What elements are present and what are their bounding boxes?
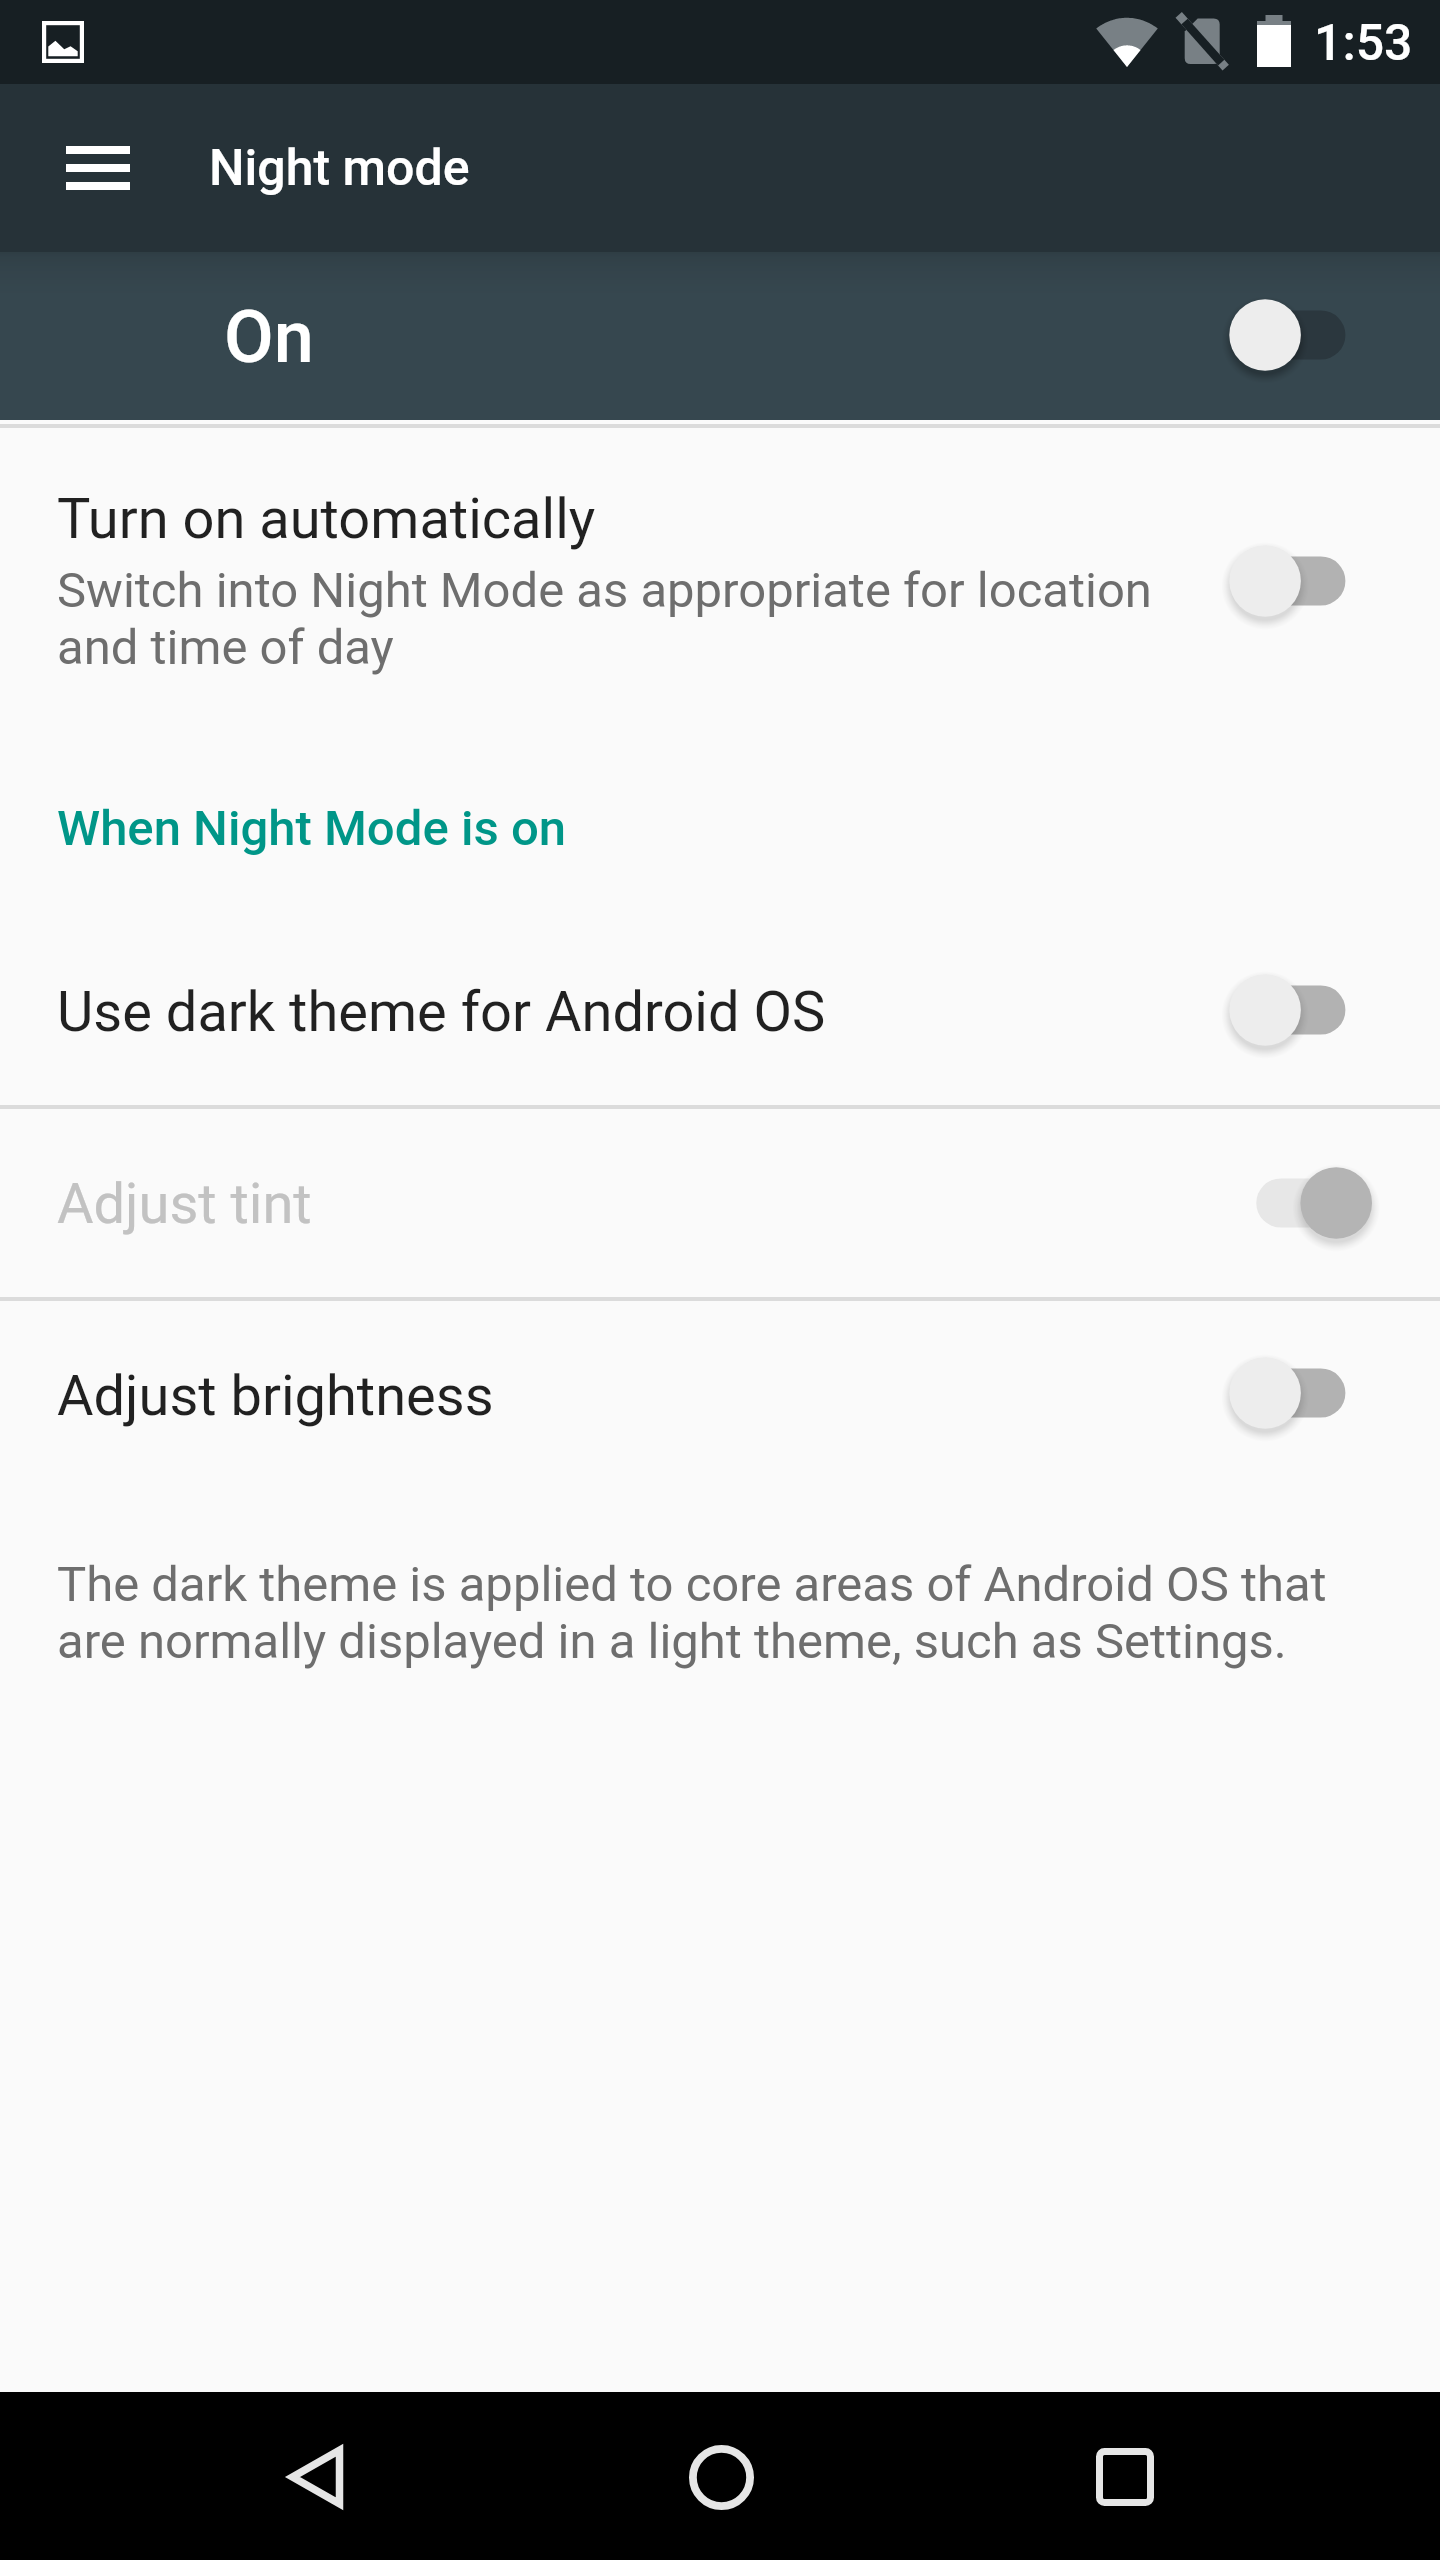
staticText: Adjust brightness — [57, 1363, 494, 1429]
button[interactable]: Toggle setting — [1229, 542, 1372, 620]
button[interactable]: Recent apps — [1045, 2397, 1205, 2557]
button[interactable]: Adjust brightness — [0, 1301, 1440, 1490]
staticText: Switch into Night Mode as appropriate fo… — [57, 562, 1207, 676]
button[interactable]: Toggle setting — [1229, 296, 1372, 374]
staticText: Use dark theme for Android OS — [57, 979, 826, 1045]
button[interactable]: Turn on automatically — [0, 428, 1440, 760]
button[interactable]: Toggle setting — [1229, 1354, 1372, 1432]
staticText: Adjust tint — [57, 1171, 312, 1237]
button[interactable]: Open navigation drawer — [26, 96, 170, 240]
staticText: 1:53 — [1314, 14, 1413, 73]
button[interactable]: Toggle setting — [1229, 971, 1372, 1049]
staticText: The dark theme is applied to core areas … — [57, 1556, 1357, 1670]
button[interactable]: Toggle setting — [1229, 1164, 1372, 1242]
button[interactable]: Back — [236, 2397, 396, 2557]
staticText: When Night Mode is on — [57, 800, 567, 857]
button[interactable]: Home — [641, 2397, 801, 2557]
staticText: Night mode — [209, 139, 470, 198]
staticText: On — [224, 295, 314, 379]
staticText: Turn on automatically — [57, 486, 596, 552]
button[interactable]: Use dark theme for Android OS — [0, 920, 1440, 1105]
button[interactable]: Adjust tint — [0, 1109, 1440, 1297]
